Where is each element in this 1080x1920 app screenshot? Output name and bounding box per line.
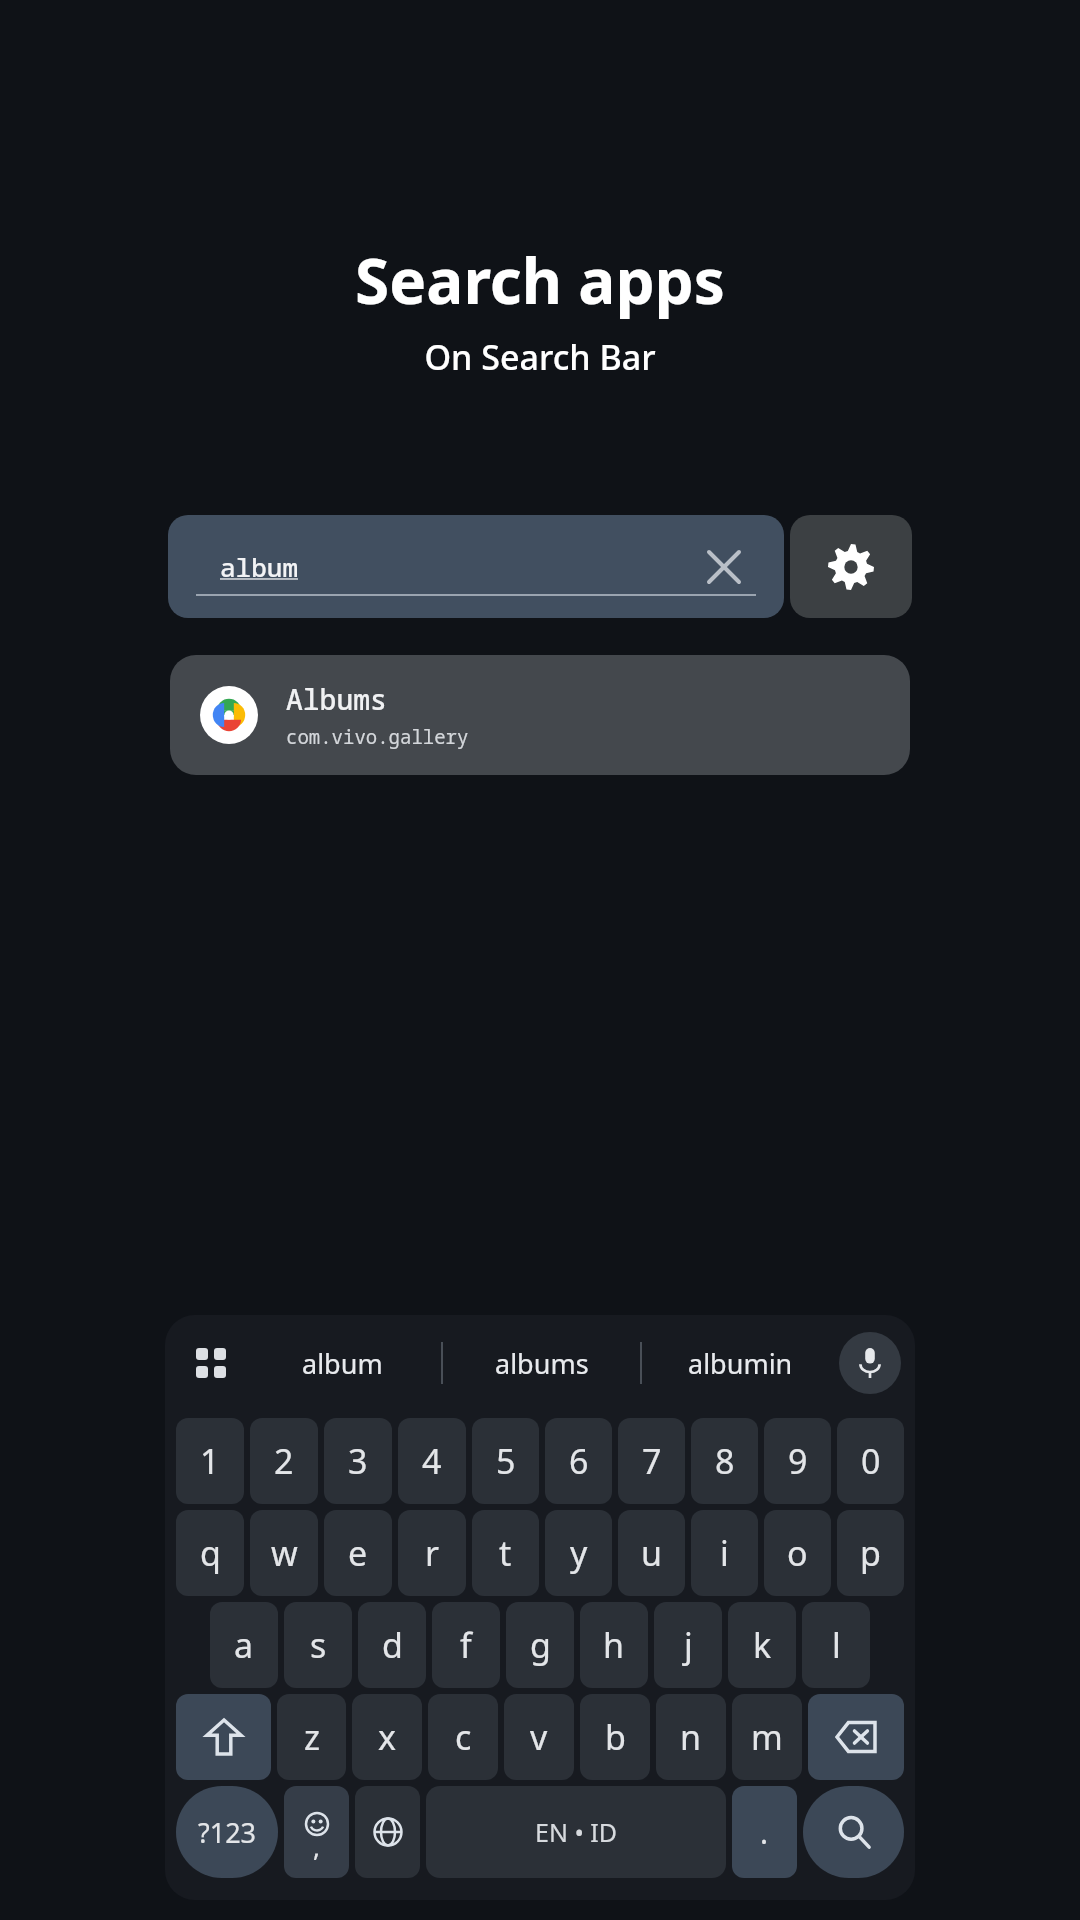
button[interactable]: m	[732, 1694, 802, 1780]
staticText: 8	[715, 1438, 735, 1484]
button[interactable]: z	[277, 1694, 346, 1780]
button[interactable]: albums	[443, 1315, 640, 1411]
button[interactable]: y	[545, 1510, 612, 1596]
staticText: com.vivo.gallery	[286, 724, 469, 750]
staticText: s	[310, 1622, 327, 1668]
button[interactable]: i	[691, 1510, 758, 1596]
staticText: w	[271, 1530, 298, 1576]
staticText: 3	[348, 1438, 368, 1484]
button[interactable]: b	[580, 1694, 650, 1780]
button[interactable]: 4	[398, 1418, 466, 1504]
staticText: v	[530, 1714, 548, 1760]
button[interactable]: s	[284, 1602, 352, 1688]
button[interactable]: Search	[803, 1786, 904, 1878]
button[interactable]: d	[358, 1602, 426, 1688]
button[interactable]: j	[654, 1602, 722, 1688]
staticText: Search apps	[355, 238, 725, 322]
button[interactable]: t	[472, 1510, 539, 1596]
button[interactable]: 1	[176, 1418, 244, 1504]
staticText: 0	[861, 1438, 881, 1484]
button[interactable]: Voice input	[839, 1332, 901, 1394]
button[interactable]: p	[837, 1510, 904, 1596]
button[interactable]: 0	[837, 1418, 904, 1504]
staticText: 2	[274, 1438, 294, 1484]
staticText: 4	[422, 1438, 442, 1484]
staticText: albums	[495, 1345, 589, 1382]
staticText: r	[425, 1530, 440, 1576]
button[interactable]: 3	[324, 1418, 392, 1504]
staticText: b	[605, 1714, 626, 1760]
staticText: Albums	[286, 680, 387, 718]
button[interactable]: c	[428, 1694, 498, 1780]
staticText: ,	[313, 1829, 320, 1864]
button[interactable]: Change language	[355, 1786, 420, 1878]
staticText: p	[860, 1530, 881, 1576]
button[interactable]: o	[764, 1510, 831, 1596]
button[interactable]: k	[728, 1602, 796, 1688]
button[interactable]: .	[732, 1786, 797, 1878]
button[interactable]: Emoji	[284, 1786, 349, 1878]
staticText: EN • ID	[535, 1815, 618, 1849]
staticText: o	[787, 1530, 808, 1576]
staticText: n	[680, 1714, 702, 1760]
staticText: 6	[569, 1438, 589, 1484]
staticText: j	[684, 1622, 693, 1668]
button[interactable]: n	[656, 1694, 726, 1780]
button[interactable]: Shift	[176, 1694, 271, 1780]
button[interactable]: EN • ID	[426, 1786, 726, 1878]
button[interactable]: 9	[764, 1418, 831, 1504]
staticText: .	[760, 1812, 769, 1853]
staticText: On Search Bar	[424, 334, 656, 380]
staticText: f	[460, 1622, 472, 1668]
button[interactable]: g	[506, 1602, 574, 1688]
staticText: y	[570, 1530, 588, 1576]
button[interactable]: Albums	[170, 655, 910, 775]
button[interactable]: ?123	[176, 1786, 278, 1878]
staticText: u	[641, 1530, 663, 1576]
button[interactable]: albumin	[642, 1315, 839, 1411]
staticText: album	[220, 549, 299, 584]
staticText: a	[234, 1622, 254, 1668]
button[interactable]: 8	[691, 1418, 758, 1504]
staticText: d	[382, 1622, 403, 1668]
button[interactable]: r	[398, 1510, 466, 1596]
button[interactable]: album	[243, 1315, 441, 1411]
button[interactable]: w	[250, 1510, 318, 1596]
button[interactable]: a	[210, 1602, 278, 1688]
staticText: h	[603, 1622, 625, 1668]
button[interactable]: 7	[618, 1418, 685, 1504]
button[interactable]: f	[432, 1602, 500, 1688]
staticText: 1	[200, 1438, 220, 1484]
staticText: 5	[496, 1438, 516, 1484]
button[interactable]: Settings	[790, 515, 912, 618]
button[interactable]: e	[324, 1510, 392, 1596]
button[interactable]: 5	[472, 1418, 539, 1504]
staticText: c	[455, 1714, 472, 1760]
button[interactable]: Keyboard menu	[179, 1331, 243, 1395]
button[interactable]: v	[504, 1694, 574, 1780]
button[interactable]: u	[618, 1510, 685, 1596]
staticText: 7	[642, 1438, 662, 1484]
staticText: x	[378, 1714, 396, 1760]
staticText: albumin	[688, 1345, 793, 1382]
button[interactable]: Backspace	[808, 1694, 904, 1780]
button[interactable]: album	[168, 515, 784, 618]
staticText: l	[832, 1622, 841, 1668]
button[interactable]: Clear search	[698, 541, 750, 593]
staticText: album	[302, 1345, 383, 1382]
button[interactable]: 6	[545, 1418, 612, 1504]
button[interactable]: x	[352, 1694, 422, 1780]
staticText: k	[753, 1622, 772, 1668]
button[interactable]: q	[176, 1510, 244, 1596]
button[interactable]: h	[580, 1602, 648, 1688]
button[interactable]: l	[802, 1602, 870, 1688]
staticText: q	[200, 1530, 221, 1576]
button[interactable]: 2	[250, 1418, 318, 1504]
staticText: z	[304, 1714, 320, 1760]
staticText: g	[530, 1622, 551, 1668]
staticText: i	[720, 1530, 729, 1576]
staticText: 9	[788, 1438, 808, 1484]
staticText: e	[348, 1530, 368, 1576]
staticText: m	[751, 1714, 783, 1760]
staticText: t	[499, 1530, 512, 1576]
